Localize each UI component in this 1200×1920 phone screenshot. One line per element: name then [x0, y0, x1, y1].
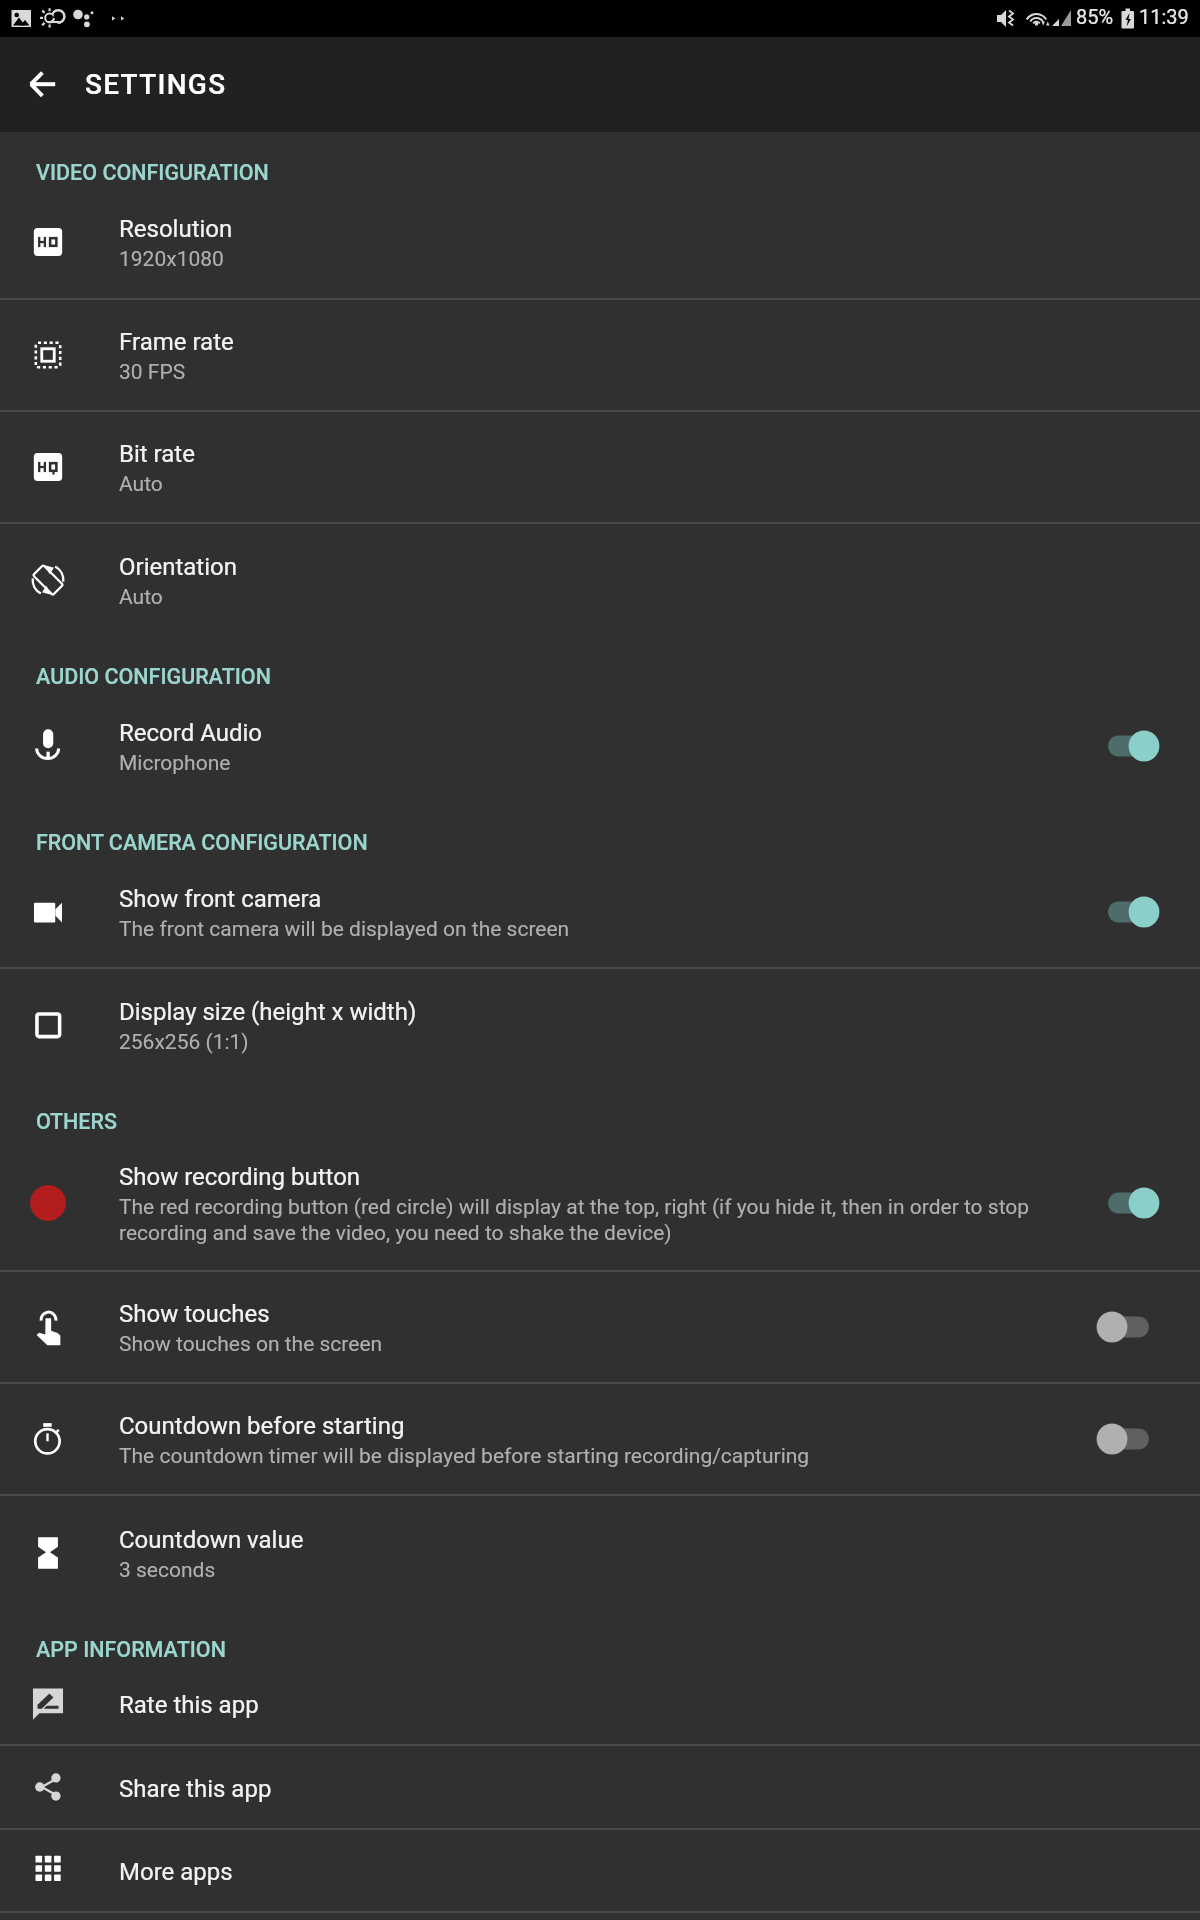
staticText: Display size (height x width) — [119, 998, 417, 1026]
button[interactable]: Resolution — [0, 186, 1200, 298]
staticText: Show front camera — [119, 885, 322, 913]
staticText: 3 seconds — [119, 1558, 216, 1583]
staticText: OTHERS — [36, 1109, 117, 1134]
staticText: 30 FPS — [119, 360, 186, 385]
staticText: Auto — [119, 472, 163, 497]
button[interactable]: Toggle Countdown before starting — [1084, 1384, 1200, 1494]
staticText: Share this app — [119, 1775, 272, 1803]
staticText: The front camera will be displayed on th… — [119, 917, 570, 942]
staticText: SETTINGS — [85, 68, 227, 101]
staticText: Countdown value — [119, 1526, 304, 1554]
staticText: Show touches on the screen — [119, 1332, 383, 1357]
button[interactable]: Orientation — [0, 524, 1200, 636]
staticText: The red recording button (red circle) wi… — [119, 1195, 1042, 1245]
staticText: Show recording button — [119, 1163, 361, 1191]
button[interactable]: Display size (height x width) — [0, 969, 1200, 1081]
staticText: 256x256 (1:1) — [119, 1030, 249, 1055]
staticText: 11:39 — [1139, 5, 1189, 28]
staticText: Countdown before starting — [119, 1412, 405, 1440]
staticText: APP INFORMATION — [36, 1637, 226, 1662]
staticText: AUDIO CONFIGURATION — [36, 664, 271, 689]
button[interactable]: Bit rate — [0, 412, 1200, 522]
staticText: Frame rate — [119, 328, 234, 356]
staticText: The countdown timer will be displayed be… — [119, 1444, 810, 1469]
button[interactable]: Frame rate — [0, 300, 1200, 410]
staticText: Show touches — [119, 1300, 270, 1328]
button[interactable]: Back — [18, 59, 70, 111]
button[interactable]: Share this app — [0, 1746, 1200, 1828]
staticText: 1920x1080 — [119, 247, 224, 272]
staticText: VIDEO CONFIGURATION — [36, 160, 269, 185]
staticText: FRONT CAMERA CONFIGURATION — [36, 830, 368, 855]
staticText: 85% — [1076, 5, 1114, 28]
button[interactable]: Show front camera — [0, 856, 1200, 967]
button[interactable]: Show touches — [0, 1272, 1200, 1382]
staticText: Resolution — [119, 215, 233, 243]
staticText: Rate this app — [119, 1691, 259, 1719]
button[interactable]: Toggle Show touches — [1084, 1272, 1200, 1382]
staticText: More apps — [119, 1858, 233, 1886]
button[interactable]: Show recording button — [0, 1135, 1200, 1270]
button[interactable]: Toggle Record Audio — [1084, 690, 1200, 802]
staticText: Microphone — [119, 751, 231, 776]
button[interactable]: Record Audio — [0, 690, 1200, 802]
button[interactable]: Toggle Show front camera — [1084, 856, 1200, 967]
staticText: Orientation — [119, 553, 237, 581]
button[interactable]: Toggle Show recording button — [1084, 1135, 1200, 1270]
button[interactable]: Rate this app — [0, 1663, 1200, 1744]
staticText: Auto — [119, 585, 163, 610]
staticText: Record Audio — [119, 719, 262, 747]
button[interactable]: Countdown before starting — [0, 1384, 1200, 1494]
button[interactable]: More apps — [0, 1830, 1200, 1911]
staticText: Bit rate — [119, 440, 195, 468]
button[interactable]: Countdown value — [0, 1496, 1200, 1609]
